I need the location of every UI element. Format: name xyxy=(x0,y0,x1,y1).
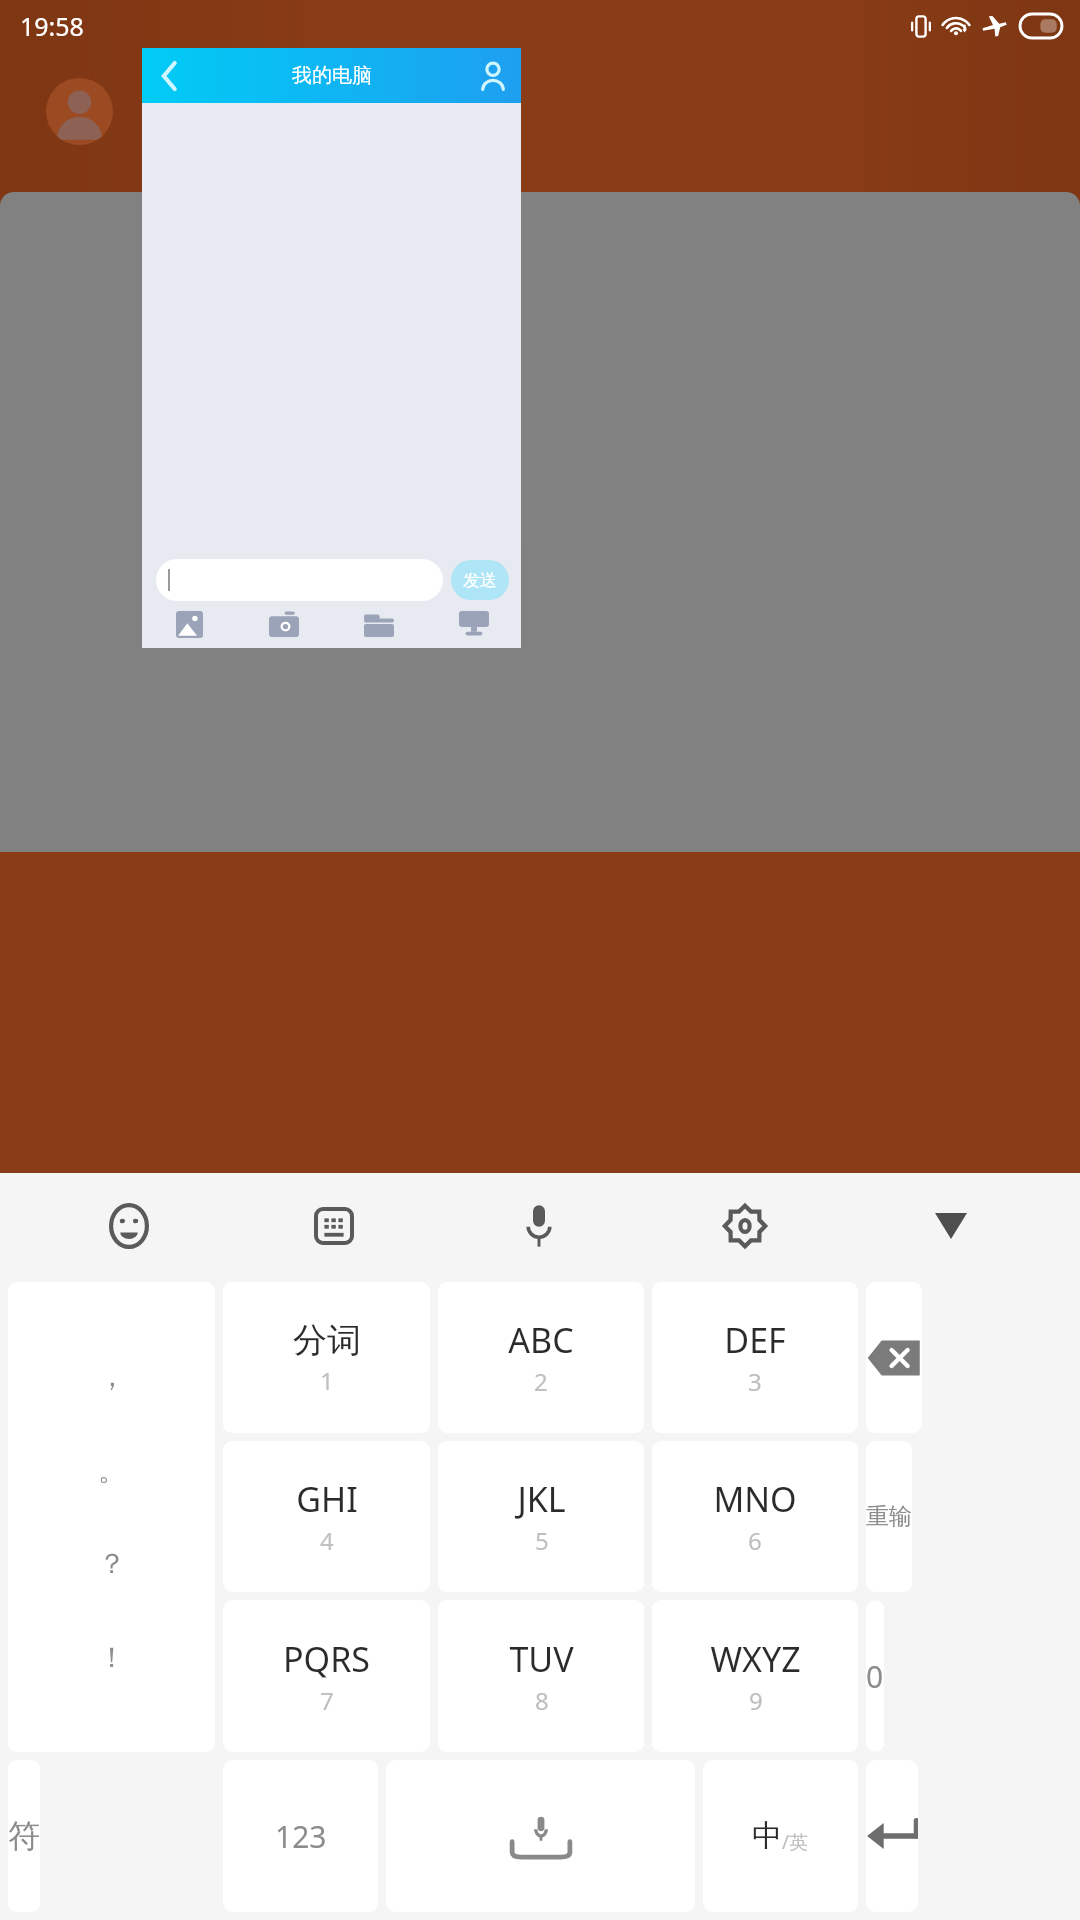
button[interactable]: Gallery xyxy=(142,603,236,645)
button[interactable]: Enter xyxy=(866,1760,918,1912)
staticText: TUV xyxy=(509,1636,574,1682)
button[interactable]: Space xyxy=(386,1760,695,1912)
button[interactable]: JKL xyxy=(438,1441,644,1592)
staticText: 分词 xyxy=(293,1319,361,1362)
button[interactable]: 中 xyxy=(703,1760,858,1912)
staticText: 19:58 xyxy=(20,9,84,43)
button[interactable]: Profile xyxy=(465,48,521,103)
button[interactable]: WXYZ xyxy=(652,1600,858,1752)
button[interactable]: Camera xyxy=(236,603,331,645)
button[interactable]: 分词 xyxy=(223,1282,430,1433)
staticText: 2 xyxy=(534,1365,548,1398)
staticText: 发送 xyxy=(463,570,497,591)
staticText: 3 xyxy=(748,1365,762,1398)
button[interactable]: MNO xyxy=(652,1441,858,1592)
button[interactable]: TUV xyxy=(438,1600,644,1752)
staticText: DEF xyxy=(724,1317,786,1363)
button[interactable]: 123 xyxy=(223,1760,378,1912)
staticText: 中 xyxy=(752,1817,782,1855)
staticText: 123 xyxy=(275,1816,327,1857)
button[interactable]: Back xyxy=(142,48,196,103)
staticText: MNO xyxy=(713,1476,797,1522)
button[interactable]: PQRS xyxy=(223,1600,430,1752)
staticText: WXYZ xyxy=(710,1636,801,1682)
staticText: 。 xyxy=(98,1453,126,1488)
staticText: ABC xyxy=(508,1317,574,1363)
button[interactable]: Voice input xyxy=(436,1173,642,1278)
staticText: 6 xyxy=(748,1524,762,1557)
button[interactable]: Hide keyboard xyxy=(848,1173,1054,1278)
button[interactable]: Keyboard layout xyxy=(231,1173,436,1278)
staticText: 7 xyxy=(320,1684,334,1717)
button[interactable]: 符 xyxy=(8,1760,40,1912)
button[interactable]: ABC xyxy=(438,1282,644,1433)
button[interactable]: Backspace xyxy=(866,1282,922,1433)
staticText: 符 xyxy=(8,1816,40,1856)
button[interactable] xyxy=(156,559,443,601)
button[interactable]: Emoji xyxy=(26,1173,231,1278)
staticText: ？ xyxy=(98,1546,126,1581)
staticText: JKL xyxy=(517,1476,566,1522)
staticText: PQRS xyxy=(283,1636,370,1682)
staticText: 4 xyxy=(320,1524,334,1557)
staticText: 1 xyxy=(320,1364,334,1397)
staticText: 我的电脑 xyxy=(292,63,372,88)
button[interactable]: 0 xyxy=(866,1600,884,1752)
staticText: /英 xyxy=(782,1829,809,1855)
staticText: 5 xyxy=(535,1524,549,1557)
staticText: 9 xyxy=(749,1684,763,1717)
button[interactable]: Settings xyxy=(642,1173,848,1278)
button[interactable]: 重输 xyxy=(866,1441,912,1592)
staticText: 重输 xyxy=(866,1502,912,1531)
staticText: ， xyxy=(98,1359,126,1394)
staticText: 0 xyxy=(866,1656,884,1697)
button[interactable]: GHI xyxy=(223,1441,430,1592)
staticText: ！ xyxy=(98,1640,126,1675)
staticText: GHI xyxy=(296,1476,358,1522)
button[interactable]: Files xyxy=(331,603,426,645)
button[interactable]: ， xyxy=(8,1282,215,1752)
button[interactable]: 发送 xyxy=(451,560,509,600)
staticText: 8 xyxy=(535,1684,549,1717)
button[interactable]: DEF xyxy=(652,1282,858,1433)
button[interactable]: Computer xyxy=(426,603,521,645)
